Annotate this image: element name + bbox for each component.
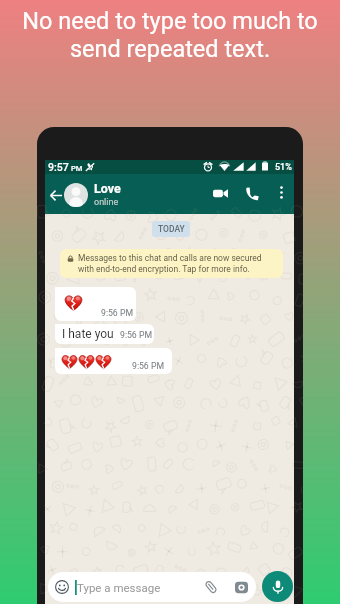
button[interactable]: Attach [203, 579, 219, 595]
staticText: 9:56 PM [132, 361, 164, 371]
staticText: I hate you [62, 327, 114, 341]
staticText: PM [71, 164, 83, 173]
button[interactable]: Profile photo [64, 183, 88, 207]
staticText: Love [94, 181, 121, 196]
button[interactable]: I hate you [55, 324, 154, 344]
button[interactable]: Messages to this chat and calls are now … [60, 249, 283, 278]
staticText: Messages to this chat and calls are now … [78, 253, 263, 274]
staticText: 9:56 PM [101, 308, 133, 318]
staticText: 51% [275, 162, 292, 173]
button[interactable]: TODAY [152, 221, 190, 237]
staticText: 9:56 PM [120, 330, 152, 340]
button[interactable]: More options [270, 181, 292, 203]
button[interactable]: 9:56 PM [55, 287, 136, 321]
button[interactable]: Camera [233, 579, 249, 595]
button[interactable]: 9:56 PM [55, 348, 172, 374]
button[interactable]: Back [45, 182, 66, 208]
button[interactable]: Voice message [262, 571, 293, 602]
button[interactable]: Type a message [48, 572, 256, 602]
button[interactable]: Video call [208, 181, 233, 206]
staticText: Type a message [77, 581, 161, 594]
staticText: 9:57 [48, 161, 69, 173]
button[interactable]: Call [239, 181, 264, 206]
button[interactable]: Love [94, 181, 121, 208]
staticText: TODAY [158, 224, 185, 234]
staticText: No need to type too much to send repeate… [0, 7, 340, 63]
staticText: online [94, 197, 119, 208]
